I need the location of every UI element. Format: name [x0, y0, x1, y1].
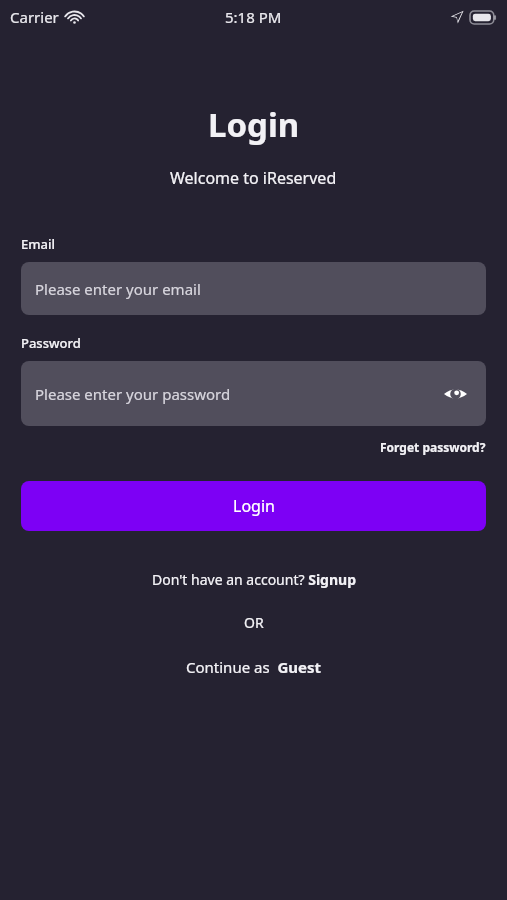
- staticText: Email: [21, 235, 56, 253]
- staticText: Forget password?: [380, 439, 486, 455]
- staticText: 5:18 PM: [225, 7, 282, 27]
- staticText: Carrier: [10, 7, 59, 27]
- button[interactable]: Please enter your password: [21, 361, 486, 426]
- button[interactable]: Show password: [438, 377, 472, 411]
- staticText: OR: [244, 613, 264, 632]
- staticText: Password: [21, 334, 81, 352]
- staticText: Don't have an account? Signup: [152, 570, 356, 589]
- staticText: Continue as Guest: [186, 657, 322, 677]
- staticText: Please enter your password: [35, 384, 231, 404]
- button[interactable]: Please enter your email: [21, 262, 486, 315]
- staticText: Please enter your email: [35, 279, 201, 299]
- button[interactable]: Continue as Guest: [0, 657, 507, 677]
- staticText: Login: [208, 102, 300, 147]
- button[interactable]: Don't have an account? Signup: [0, 570, 507, 589]
- button[interactable]: Login: [21, 481, 486, 531]
- staticText: Login: [233, 495, 275, 517]
- staticText: Welcome to iReserved: [170, 167, 337, 189]
- button[interactable]: Forget password?: [380, 439, 486, 455]
